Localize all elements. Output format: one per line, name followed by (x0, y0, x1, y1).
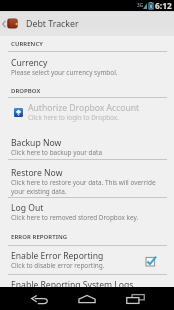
button[interactable]: Recent apps (124, 288, 146, 309)
button[interactable]: Authorize Dropbox Account (0, 101, 174, 124)
staticText: Currency (11, 57, 48, 69)
staticText: Restore Now (11, 167, 63, 179)
staticText: Log Out (11, 202, 44, 214)
staticText: ERROR REPORTING (11, 233, 68, 241)
button[interactable]: Log Out (0, 201, 174, 225)
staticText: Enable Reporting System Logs (11, 279, 134, 291)
staticText: DROPBOX (11, 87, 41, 95)
staticText: 3G (137, 2, 143, 8)
staticText: Click here to restore your data. This wi… (11, 178, 165, 196)
button[interactable]: Restore Now (0, 166, 174, 199)
staticText: Click here to login to Dropbox. (28, 113, 119, 122)
button[interactable]: Navigate up (0, 11, 174, 36)
button[interactable]: Backup Now (0, 136, 174, 160)
staticText: Backup Now (11, 137, 62, 149)
staticText: Click here to removed stored Dropbox key… (11, 213, 139, 222)
staticText: Authorize Dropbox Account (28, 102, 140, 114)
button[interactable]: Enable Error Reporting (0, 249, 174, 272)
staticText: Please select your currency symbol. (11, 68, 118, 77)
staticText: 6:12 (155, 0, 172, 11)
button[interactable]: Home (76, 288, 98, 309)
button[interactable]: Enable Reporting System Logs (0, 278, 174, 292)
button[interactable]: Currency (0, 56, 174, 80)
staticText: CURRENCY (11, 40, 43, 48)
staticText: Click to disable error reporting. (11, 261, 105, 270)
staticText: Enable Error Reporting (11, 250, 104, 262)
staticText: Debt Tracker (26, 18, 79, 30)
button[interactable]: Back (28, 288, 50, 309)
staticText: Click here to backup your data (11, 148, 102, 157)
